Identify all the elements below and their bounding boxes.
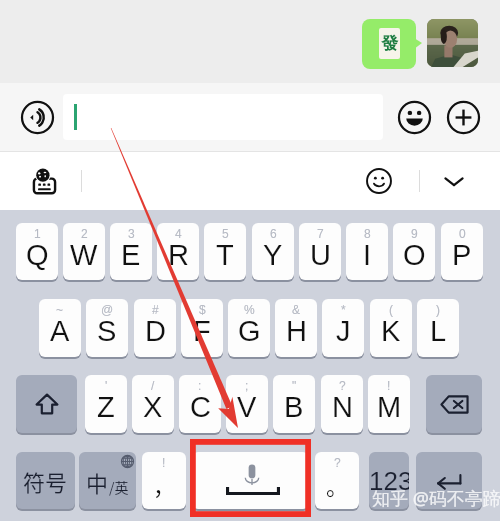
button[interactable]: ' (85, 375, 127, 433)
staticText: 4 (175, 227, 182, 240)
staticText: /英 (109, 477, 129, 497)
button[interactable] (63, 94, 383, 140)
button[interactable]: Hide keyboard (438, 165, 470, 197)
staticText: N (332, 391, 353, 423)
staticText: A (50, 315, 70, 347)
button[interactable]: : (179, 375, 221, 433)
button[interactable]: & (275, 299, 317, 357)
staticText: 知乎 @码不亭蹄 (372, 486, 500, 511)
staticText: 8 (364, 227, 371, 240)
button[interactable]: ? (321, 375, 363, 433)
staticText: Q (26, 239, 49, 271)
staticText: G (238, 315, 261, 347)
button[interactable]: " (273, 375, 315, 433)
staticText: P (452, 239, 472, 271)
staticText: 123 (369, 466, 409, 495)
button[interactable]: 1 (16, 223, 58, 280)
staticText: " (292, 379, 297, 392)
staticText: 發 (381, 33, 398, 54)
staticText: O (403, 239, 426, 271)
button[interactable]: ! (142, 452, 186, 509)
button[interactable]: @ (86, 299, 128, 357)
button[interactable]: ? (315, 452, 359, 509)
staticText: * (341, 303, 346, 316)
staticText: F (193, 315, 211, 347)
button[interactable]: Space (192, 452, 309, 509)
button[interactable]: ) (417, 299, 459, 357)
button[interactable]: ~ (39, 299, 81, 357)
button[interactable]: ; (226, 375, 268, 433)
staticText: 6 (270, 227, 277, 240)
staticText: M (377, 391, 402, 423)
staticText: L (430, 315, 447, 347)
button[interactable]: $ (181, 299, 223, 357)
staticText: K (381, 315, 401, 347)
staticText: 7 (317, 227, 324, 240)
staticText: ; (245, 379, 249, 392)
button[interactable]: * (322, 299, 364, 357)
staticText: Y (263, 239, 283, 271)
staticText: 9 (411, 227, 418, 240)
staticText: 1 (34, 227, 41, 240)
button[interactable]: 0 (441, 223, 483, 280)
button[interactable]: 符号 (16, 452, 75, 509)
staticText: T (216, 239, 234, 271)
button[interactable]: 4 (157, 223, 199, 280)
button[interactable]: 5 (204, 223, 246, 280)
staticText: ? (339, 379, 346, 392)
staticText: ( (389, 303, 393, 316)
staticText: E (121, 239, 141, 271)
button[interactable]: Voice input (18, 98, 56, 136)
staticText: 0 (459, 227, 466, 240)
staticText: % (244, 303, 255, 316)
staticText: 中 (86, 466, 109, 498)
staticText: ， (153, 469, 176, 501)
button[interactable]: ( (370, 299, 412, 357)
staticText: B (284, 391, 304, 423)
staticText: ~ (56, 303, 64, 316)
button[interactable]: Backspace (426, 375, 482, 433)
button[interactable]: Avatar (427, 19, 478, 67)
button[interactable]: Switch input method (27, 164, 61, 198)
button[interactable]: Shift (16, 375, 77, 433)
staticText: X (143, 391, 163, 423)
staticText: U (310, 239, 331, 271)
staticText: $ (199, 303, 206, 316)
button[interactable]: 123 (369, 452, 409, 509)
staticText: ? (334, 456, 341, 469)
button[interactable]: 6 (252, 223, 294, 280)
button[interactable]: 9 (393, 223, 435, 280)
staticText: ' (105, 379, 108, 392)
staticText: ) (436, 303, 440, 316)
staticText: R (168, 239, 189, 271)
staticText: J (336, 315, 351, 347)
button[interactable]: 發 (362, 19, 422, 69)
button[interactable]: ! (368, 375, 410, 433)
staticText: D (145, 315, 166, 347)
staticText: ! (162, 456, 166, 469)
staticText: 3 (128, 227, 135, 240)
button[interactable]: 中 (79, 452, 136, 509)
staticText: @ (101, 303, 114, 316)
button[interactable]: % (228, 299, 270, 357)
staticText: I (363, 239, 372, 271)
staticText: 5 (222, 227, 229, 240)
staticText: / (151, 379, 155, 392)
button[interactable]: 3 (110, 223, 152, 280)
button[interactable]: 7 (299, 223, 341, 280)
staticText: & (292, 303, 301, 316)
button[interactable]: 2 (63, 223, 105, 280)
button[interactable]: 8 (346, 223, 388, 280)
button[interactable]: Stickers (363, 165, 395, 197)
staticText: 符号 (23, 465, 68, 497)
staticText: ! (387, 379, 391, 392)
button[interactable]: # (134, 299, 176, 357)
staticText: 。 (326, 469, 349, 501)
button[interactable]: Emoji (396, 99, 432, 135)
button[interactable]: Enter (416, 452, 482, 509)
staticText: S (97, 315, 117, 347)
button[interactable]: / (132, 375, 174, 433)
staticText: C (190, 391, 211, 423)
staticText: : (198, 379, 202, 392)
button[interactable]: More (445, 99, 481, 135)
